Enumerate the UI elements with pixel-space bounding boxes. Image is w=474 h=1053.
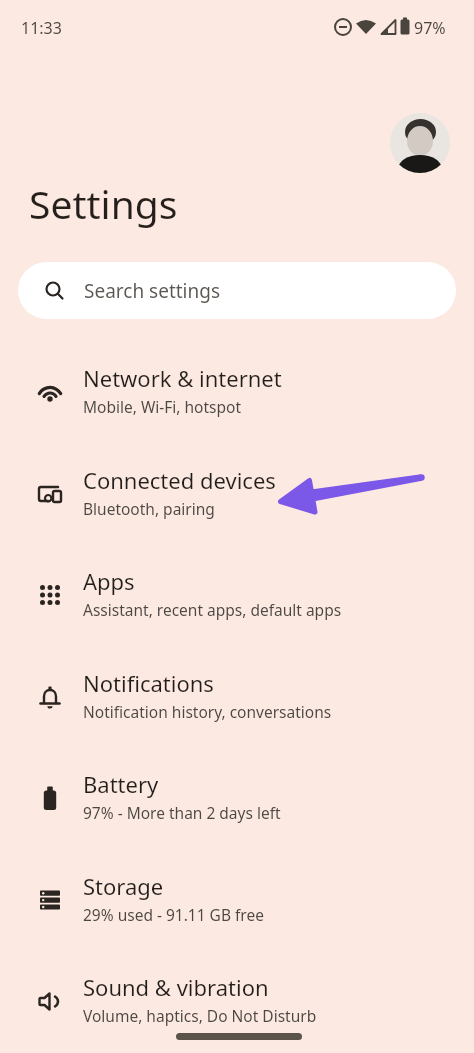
button[interactable]: Search settings xyxy=(18,262,456,319)
staticText: Sound & vibration xyxy=(83,972,269,1002)
staticText: Settings xyxy=(29,177,178,230)
staticText: Mobile, Wi-Fi, hotspot xyxy=(83,396,242,417)
staticText: Assistant, recent apps, default apps xyxy=(83,599,342,620)
staticText: Apps xyxy=(83,566,135,596)
button[interactable]: Sound & vibration xyxy=(0,950,474,1051)
button[interactable]: Network & internet xyxy=(0,341,474,442)
staticText: 97% - More than 2 days left xyxy=(83,802,281,823)
staticText: 11:33 xyxy=(21,17,62,39)
button[interactable]: Storage xyxy=(0,849,474,950)
staticText: 97% xyxy=(414,17,446,39)
staticText: Notification history, conversations xyxy=(83,701,332,722)
button[interactable]: Notifications xyxy=(0,646,474,747)
button[interactable] xyxy=(390,113,450,173)
staticText: Battery xyxy=(83,769,159,799)
button[interactable]: Battery xyxy=(0,747,474,848)
button[interactable]: Connected devices xyxy=(0,443,474,544)
staticText: 29% used - 91.11 GB free xyxy=(83,904,264,925)
staticText: Network & internet xyxy=(83,363,282,393)
staticText: Volume, haptics, Do Not Disturb xyxy=(83,1005,317,1026)
staticText: Storage xyxy=(83,871,164,901)
staticText: Search settings xyxy=(84,278,221,304)
staticText: Connected devices xyxy=(83,465,276,495)
staticText: Notifications xyxy=(83,668,214,698)
staticText: Bluetooth, pairing xyxy=(83,498,215,519)
button[interactable]: Apps xyxy=(0,544,474,645)
